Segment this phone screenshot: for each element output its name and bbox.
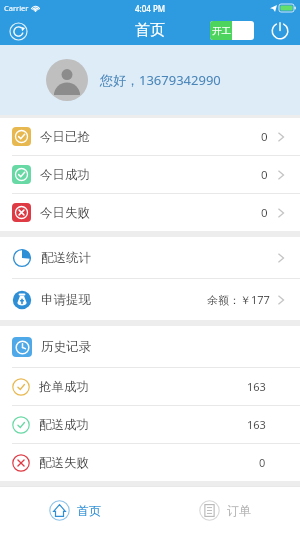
button[interactable]: 订单 — [150, 487, 300, 533]
button[interactable]: 今日已抢 — [0, 118, 300, 155]
staticText: 首页 — [135, 21, 165, 40]
button[interactable]: 今日失败 — [0, 194, 300, 231]
staticText: 配送失败 — [39, 455, 89, 471]
staticText: 今日成功 — [40, 167, 90, 183]
staticText: 163 — [247, 417, 266, 432]
button[interactable]: 配送失败 — [0, 444, 300, 481]
button[interactable]: Power — [268, 19, 292, 43]
button[interactable]: 首页 — [0, 487, 150, 533]
button[interactable]: 抢单成功 — [0, 368, 300, 405]
staticText: 0 — [261, 205, 268, 221]
staticText: Carrier — [4, 3, 29, 13]
staticText: 今日已抢 — [40, 129, 90, 145]
button[interactable]: 历史记录 — [0, 326, 300, 367]
staticText: 申请提现 — [41, 292, 91, 308]
staticText: 订单 — [227, 503, 251, 518]
staticText: 0 — [261, 129, 268, 145]
button[interactable]: 今日成功 — [0, 156, 300, 193]
staticText: 0 — [259, 455, 266, 470]
staticText: 历史记录 — [41, 339, 91, 355]
button[interactable]: Refresh — [7, 20, 29, 42]
staticText: 4:04 PM — [135, 3, 166, 14]
staticText: 0 — [261, 167, 268, 183]
button[interactable]: 配送成功 — [0, 406, 300, 443]
staticText: 抢单成功 — [39, 379, 89, 395]
button[interactable]: 开工 — [210, 21, 254, 40]
staticText: 首页 — [77, 503, 101, 518]
button[interactable]: 申请提现 — [0, 279, 300, 320]
staticText: 开工 — [212, 25, 231, 37]
staticText: 163 — [247, 379, 266, 394]
staticText: 今日失败 — [40, 205, 90, 221]
staticText: 配送成功 — [39, 417, 89, 433]
staticText: 配送统计 — [41, 250, 91, 266]
staticText: 余额：￥177 — [207, 292, 270, 307]
staticText: 您好，13679342990 — [100, 71, 221, 89]
button[interactable]: 配送统计 — [0, 237, 300, 278]
